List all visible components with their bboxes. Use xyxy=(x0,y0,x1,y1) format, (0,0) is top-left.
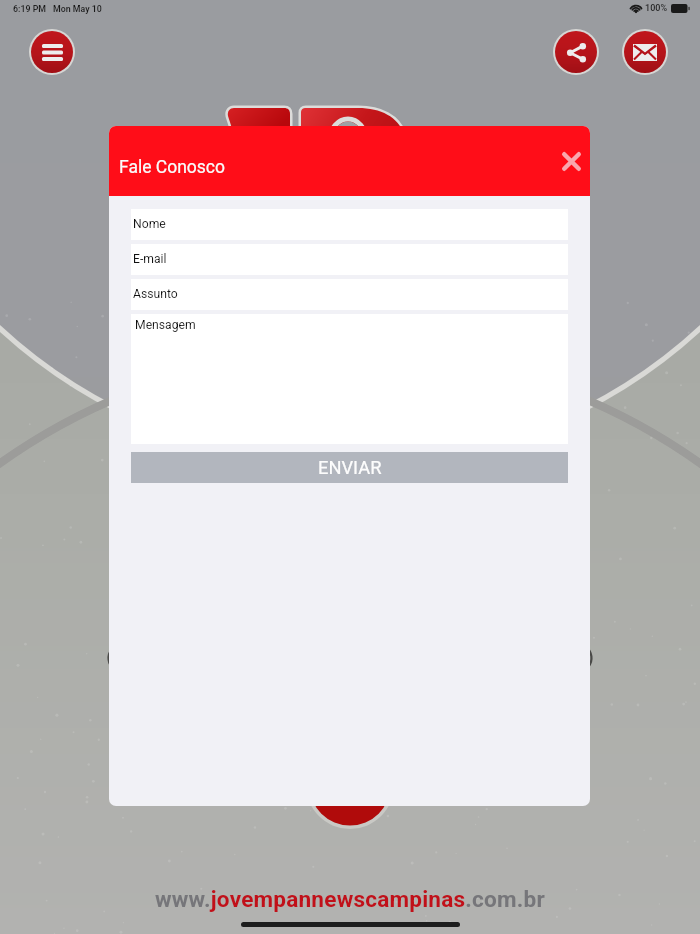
button[interactable]: Menu xyxy=(31,31,73,73)
button[interactable]: Assunto xyxy=(131,279,568,310)
staticText: 6:19 PM xyxy=(13,4,47,14)
button[interactable]: www.jovempannewscampinas.com.br xyxy=(155,886,545,912)
staticText: E-mail xyxy=(133,252,167,266)
button[interactable]: Share xyxy=(555,31,597,73)
staticText: www.jovempannewscampinas.com.br xyxy=(155,886,545,912)
button[interactable]: Email xyxy=(624,31,666,73)
staticText: Mon May 10 xyxy=(53,4,102,14)
button[interactable]: Close xyxy=(554,144,588,178)
button[interactable]: E-mail xyxy=(131,244,568,275)
staticText: Fale Conosco xyxy=(119,157,225,178)
staticText: 100% xyxy=(645,3,668,14)
button[interactable]: ENVIAR xyxy=(131,452,568,483)
button[interactable]: Nome xyxy=(131,209,568,240)
button[interactable]: Mensagem xyxy=(131,314,568,444)
staticText: Assunto xyxy=(133,287,178,301)
staticText: ENVIAR xyxy=(318,457,382,478)
staticText: Mensagem xyxy=(135,318,196,332)
staticText: Nome xyxy=(133,217,166,231)
